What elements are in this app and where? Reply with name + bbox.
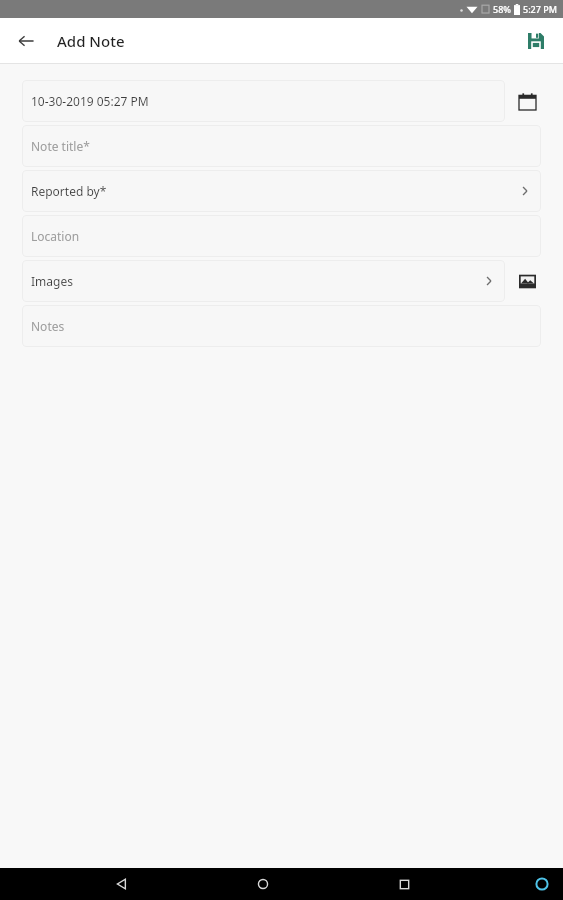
- staticText: Note title*: [31, 138, 90, 154]
- staticText: 10-30-2019 05:27 PM: [31, 93, 149, 109]
- button[interactable]: Reported by*: [22, 170, 541, 212]
- staticText: 5:27 PM: [523, 3, 557, 15]
- button[interactable]: Location: [22, 215, 541, 257]
- button[interactable]: Note title*: [22, 125, 541, 167]
- button[interactable]: Home: [243, 868, 283, 900]
- button[interactable]: Recent apps: [384, 868, 424, 900]
- staticText: Location: [31, 228, 80, 244]
- button[interactable]: Images: [22, 260, 505, 302]
- staticText: Images: [31, 273, 73, 289]
- staticText: Notes: [31, 318, 65, 334]
- staticText: Add Note: [57, 31, 125, 51]
- button[interactable]: Add image: [513, 267, 541, 295]
- button[interactable]: Save: [521, 26, 551, 56]
- button[interactable]: Assistant: [525, 868, 559, 900]
- button[interactable]: Pick date: [513, 87, 541, 115]
- staticText: Reported by*: [31, 183, 107, 199]
- staticText: 58%: [493, 3, 511, 15]
- button[interactable]: 10-30-2019 05:27 PM: [22, 80, 505, 122]
- button[interactable]: Notes: [22, 305, 541, 347]
- button[interactable]: Back: [10, 25, 42, 57]
- button[interactable]: Back: [102, 868, 142, 900]
